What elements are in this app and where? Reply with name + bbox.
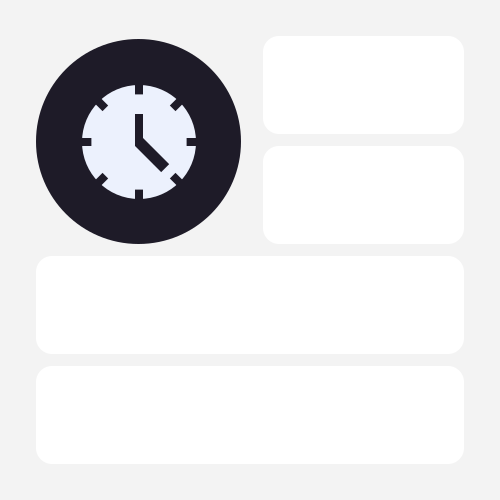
button[interactable]: Recents (36, 39, 241, 244)
